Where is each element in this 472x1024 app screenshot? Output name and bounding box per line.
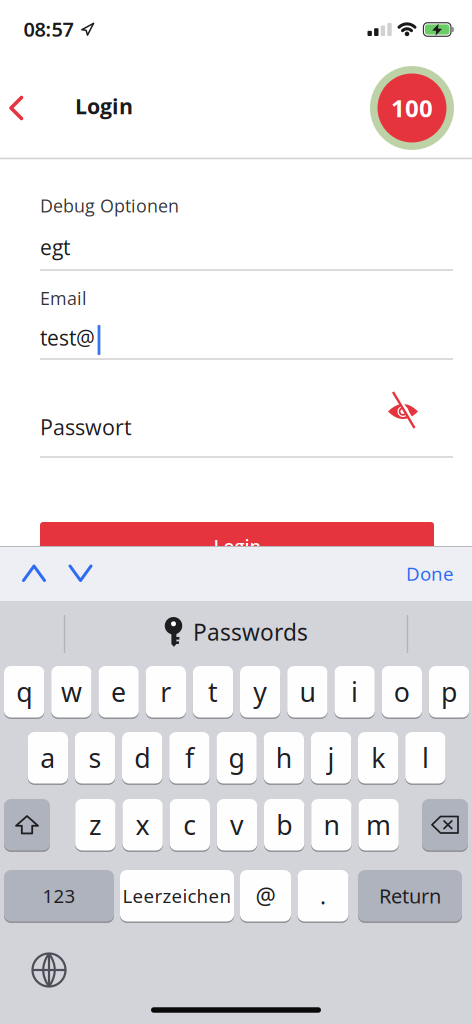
button[interactable]: k (358, 731, 398, 784)
staticText: Done (406, 561, 454, 586)
button[interactable]: Show password (383, 387, 423, 431)
staticText: Return (379, 882, 441, 909)
staticText: test@ (40, 323, 95, 352)
button[interactable]: m (358, 798, 399, 851)
staticText: x (136, 807, 150, 842)
button[interactable]: d (122, 731, 162, 784)
button[interactable]: h (264, 731, 304, 784)
button[interactable]: i (334, 665, 375, 718)
staticText: Email (40, 286, 87, 310)
staticText: w (61, 674, 82, 709)
button[interactable]: r (146, 665, 186, 718)
button[interactable]: q (4, 665, 44, 718)
button[interactable]: Login (40, 522, 434, 570)
button[interactable]: Next keyboard (30, 951, 68, 989)
button[interactable]: v (217, 798, 257, 851)
staticText: h (276, 740, 292, 775)
button[interactable]: Debug Optionen egt (0, 170, 472, 285)
button[interactable]: f (169, 731, 210, 784)
staticText: 100 (391, 92, 433, 124)
button[interactable]: l (405, 731, 446, 784)
button[interactable]: t (193, 665, 233, 718)
staticText: i (351, 674, 358, 709)
staticText: Login (213, 534, 260, 558)
button[interactable]: p (429, 665, 469, 718)
staticText: @ (255, 881, 275, 911)
button[interactable]: Passwords (71, 606, 401, 658)
button[interactable]: o (382, 665, 422, 718)
button[interactable]: Passwort (0, 380, 472, 465)
staticText: e (111, 674, 126, 709)
button[interactable]: c (170, 798, 210, 851)
button[interactable]: @ (240, 869, 291, 922)
staticText: m (366, 807, 391, 842)
staticText: Debug Optionen (40, 193, 179, 218)
button[interactable]: Leerzeichen (120, 869, 234, 922)
button[interactable]: Return (358, 869, 462, 922)
staticText: b (276, 807, 292, 842)
button[interactable]: x (122, 798, 163, 851)
button[interactable]: y (240, 665, 280, 718)
button[interactable]: e (98, 665, 139, 718)
staticText: y (253, 674, 267, 709)
button[interactable]: w (51, 665, 92, 718)
button[interactable]: j (311, 731, 351, 784)
button[interactable]: 123 (4, 869, 114, 922)
staticText: a (40, 740, 55, 775)
staticText: j (327, 740, 334, 775)
staticText: c (183, 807, 196, 842)
button[interactable]: n (311, 798, 352, 851)
staticText: 123 (42, 883, 75, 908)
staticText: Login (75, 91, 133, 121)
staticText: Passwort (40, 412, 132, 442)
button[interactable]: Next field (68, 564, 92, 582)
button[interactable]: Back (8, 95, 32, 120)
button[interactable]: u (287, 665, 328, 718)
button[interactable]: z (75, 798, 116, 851)
staticText: g (229, 740, 245, 775)
button[interactable]: Shift (4, 799, 50, 850)
staticText: d (134, 740, 150, 775)
staticText: 08:57 (23, 16, 73, 42)
button[interactable]: s (75, 731, 115, 784)
staticText: q (16, 674, 32, 709)
button[interactable]: Email test@ (0, 262, 472, 367)
staticText: f (185, 740, 194, 775)
button[interactable]: b (264, 798, 304, 851)
staticText: k (371, 740, 385, 775)
staticText: l (422, 740, 429, 775)
button[interactable]: Done (406, 561, 454, 586)
button[interactable]: Delete (422, 799, 468, 850)
staticText: n (323, 807, 339, 842)
staticText: u (299, 674, 315, 709)
staticText: z (89, 807, 102, 842)
button[interactable]: g (216, 731, 257, 784)
staticText: t (208, 674, 218, 709)
staticText: v (230, 807, 244, 842)
staticText: egt (40, 233, 70, 261)
button[interactable]: . (297, 869, 348, 922)
button[interactable]: a (28, 731, 68, 784)
staticText: Leerzeichen (122, 883, 231, 908)
staticText: . (320, 881, 326, 911)
button[interactable]: Previous field (22, 564, 46, 582)
staticText: Passwords (193, 617, 308, 647)
staticText: r (160, 674, 171, 709)
staticText: s (88, 740, 101, 775)
staticText: p (441, 674, 457, 709)
staticText: o (394, 674, 410, 709)
